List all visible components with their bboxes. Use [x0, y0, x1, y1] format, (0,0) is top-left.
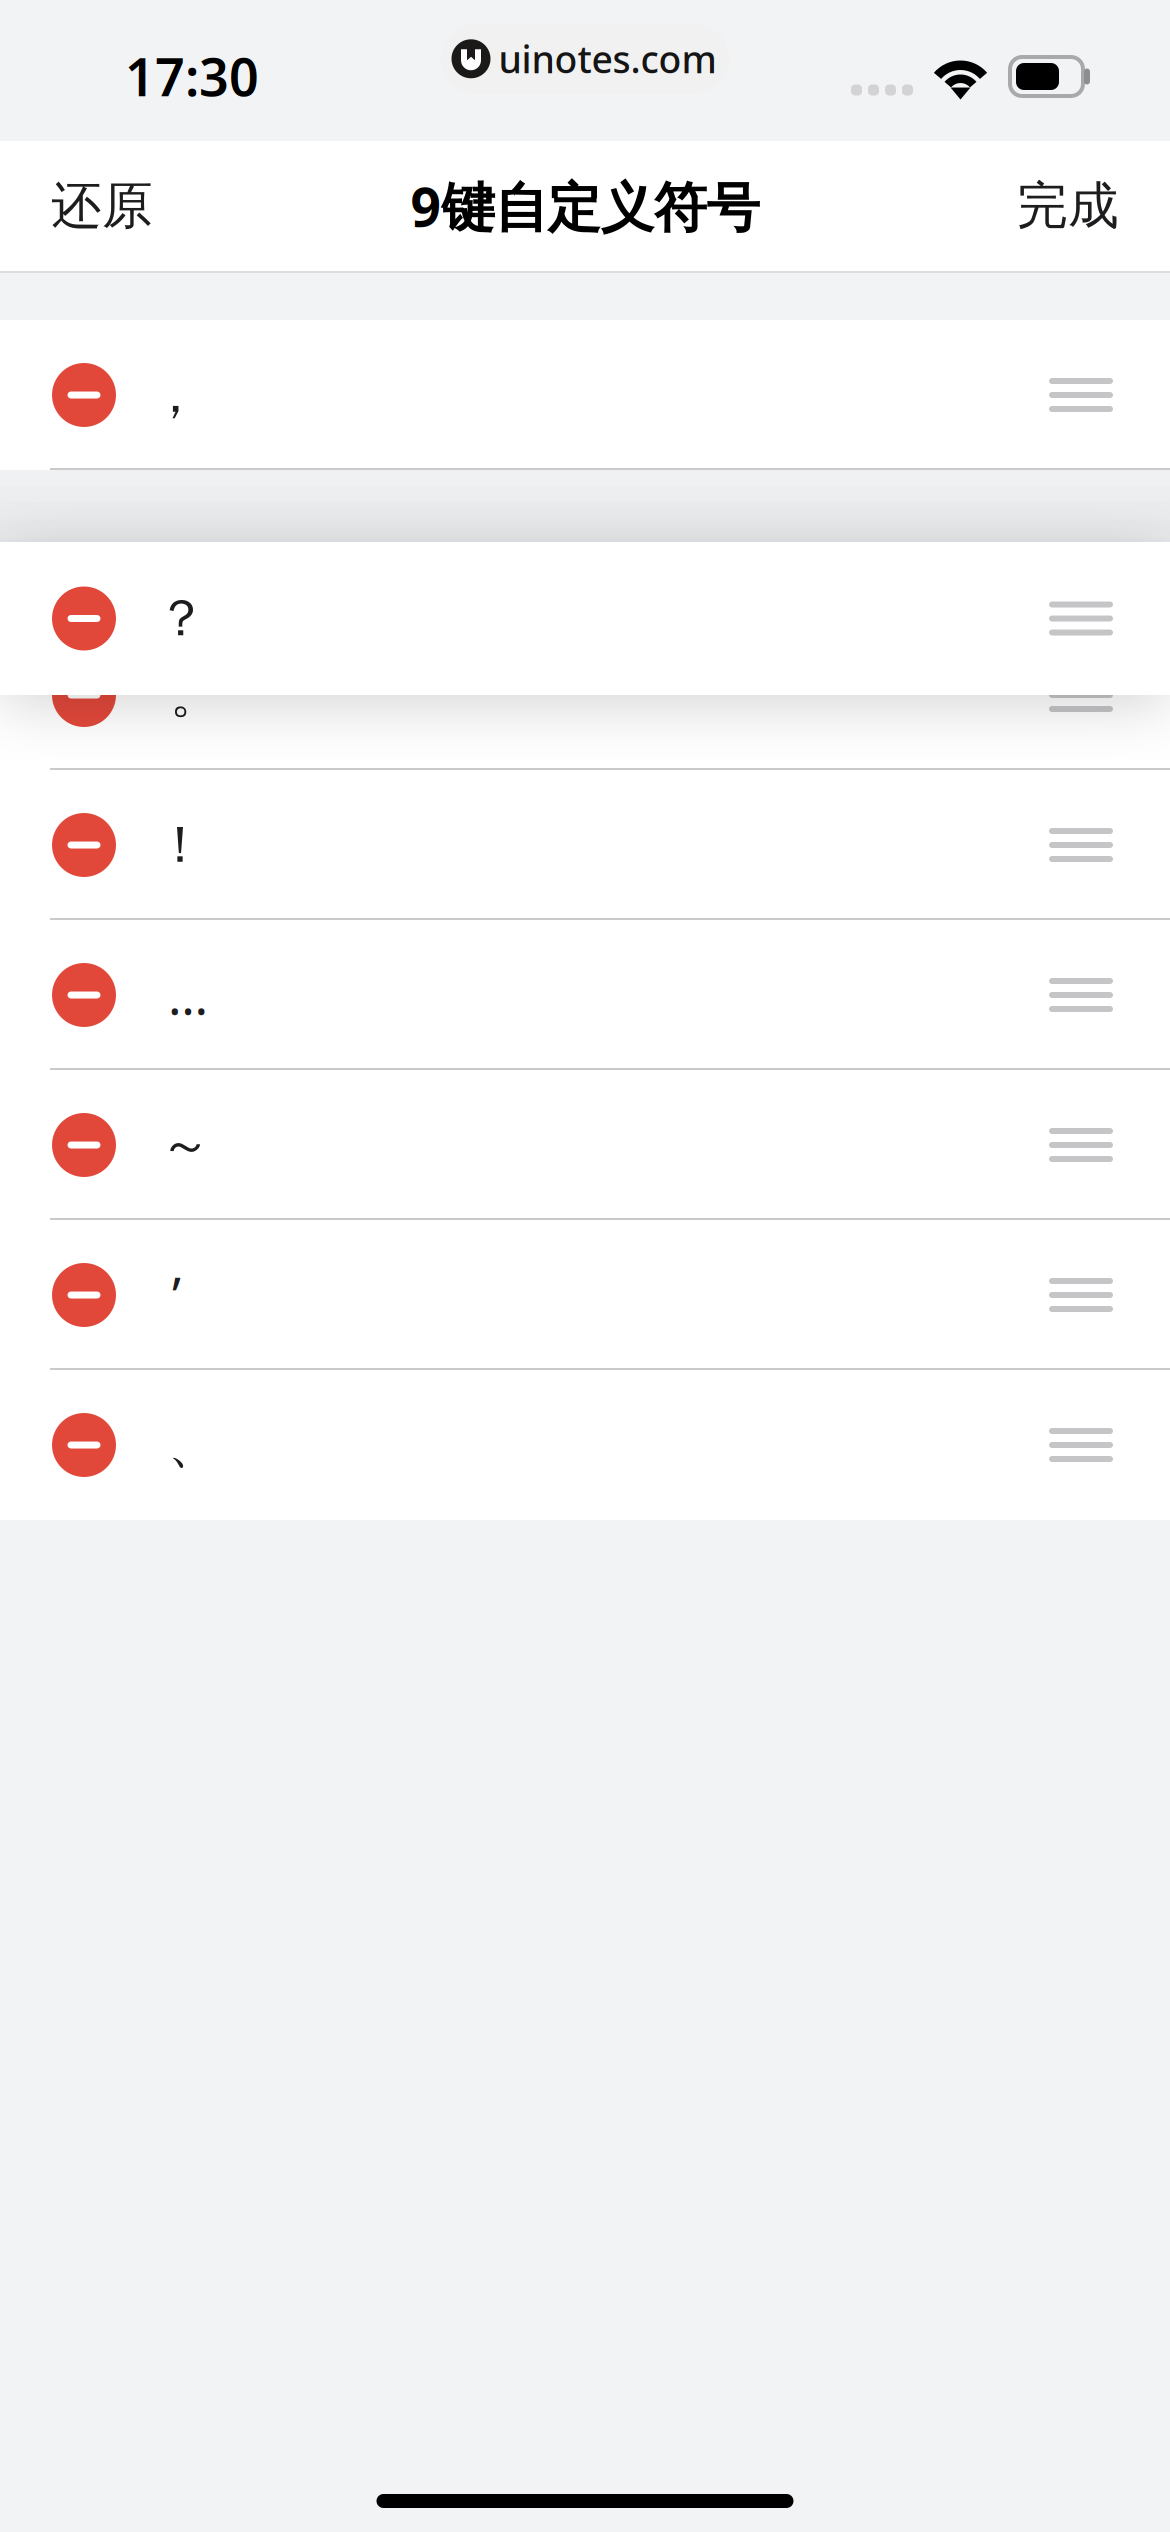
staticText: ？	[156, 587, 207, 650]
button[interactable]: Reorder symbol	[1020, 542, 1142, 695]
button[interactable]: Remove symbol	[0, 320, 168, 470]
staticText: ！	[155, 814, 206, 876]
button[interactable]: Remove symbol	[0, 1070, 168, 1220]
staticText: 完成	[1017, 175, 1119, 237]
staticText: uinotes.com	[498, 34, 716, 84]
button[interactable]: Reorder symbol	[1020, 1070, 1142, 1220]
staticText: ～	[160, 1114, 211, 1176]
button[interactable]: Remove symbol	[0, 920, 168, 1070]
staticText: 17:30	[125, 41, 259, 111]
staticText: 还原	[51, 175, 153, 237]
staticText: 。	[170, 664, 221, 726]
button[interactable]: Reorder symbol	[1020, 1370, 1142, 1520]
button[interactable]: Reorder symbol	[1020, 320, 1142, 470]
button[interactable]: Remove symbol	[0, 1220, 168, 1370]
button[interactable]: Remove symbol	[0, 542, 168, 695]
button[interactable]: Remove symbol	[0, 770, 168, 920]
button[interactable]: Reorder symbol	[1020, 1220, 1142, 1370]
staticText: …	[168, 961, 208, 1029]
button[interactable]: Reorder symbol	[1020, 920, 1142, 1070]
staticText: 9键自定义符号	[410, 171, 759, 241]
staticText: 、	[168, 1414, 219, 1476]
button[interactable]: Reorder symbol	[1020, 620, 1142, 770]
button[interactable]: Remove symbol	[0, 620, 168, 770]
button[interactable]: Reorder symbol	[1020, 770, 1142, 920]
staticText: ，	[150, 364, 201, 426]
button[interactable]: Remove symbol	[0, 1370, 168, 1520]
button[interactable]: 还原	[0, 160, 187, 252]
staticText: ’	[172, 1261, 181, 1329]
button[interactable]: 完成	[983, 160, 1170, 252]
